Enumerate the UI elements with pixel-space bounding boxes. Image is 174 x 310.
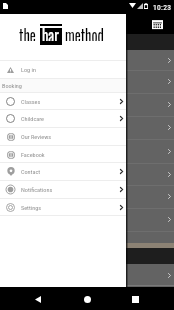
button[interactable]: Facebook	[0, 146, 126, 162]
button[interactable]	[0, 93, 174, 116]
staticText: Our Reviews	[21, 133, 51, 140]
button[interactable]: Classes	[0, 93, 126, 109]
button[interactable]: Calendar	[152, 19, 163, 30]
staticText: Contact	[21, 168, 41, 175]
button[interactable]	[0, 208, 174, 231]
button[interactable]	[0, 116, 174, 139]
staticText: Booking	[2, 82, 22, 89]
staticText: Facebook	[21, 151, 45, 158]
button[interactable]: Settings	[0, 199, 126, 215]
button[interactable]: Childcare	[0, 110, 126, 127]
staticText: Settings	[21, 204, 42, 211]
button[interactable]	[0, 50, 174, 70]
staticText: the	[19, 20, 36, 41]
staticText: bar	[42, 20, 59, 41]
staticText: 10:23	[153, 3, 172, 12]
staticText: Classes	[21, 98, 41, 105]
button[interactable]: Our Reviews	[0, 128, 126, 145]
staticText: Notifications	[21, 186, 53, 193]
button[interactable]	[0, 70, 174, 93]
button[interactable]: Home	[72, 287, 103, 310]
button[interactable]: Notifications	[0, 181, 126, 198]
button[interactable]	[0, 264, 174, 286]
button[interactable]: Log in	[0, 61, 126, 78]
staticText: Childcare	[21, 115, 44, 122]
button[interactable]	[0, 163, 174, 185]
button[interactable]: Recent apps	[120, 287, 151, 310]
staticText: method	[65, 20, 104, 41]
button[interactable]	[0, 185, 174, 208]
button[interactable]	[0, 139, 174, 163]
button[interactable]: Contact	[0, 163, 126, 180]
staticText: Log in	[21, 66, 36, 73]
button[interactable]: Back	[22, 287, 53, 310]
